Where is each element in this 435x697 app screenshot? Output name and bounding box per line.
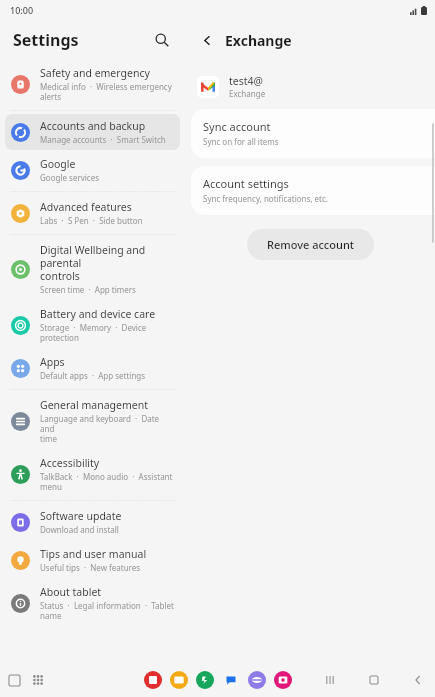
- staticText: Download and install: [40, 524, 119, 535]
- staticText: Google: [40, 157, 76, 171]
- staticText: Google services: [40, 172, 100, 183]
- button[interactable]: Software update: [5, 504, 180, 540]
- staticText: Default apps · App settings: [40, 370, 146, 381]
- button[interactable]: Recents: [6, 672, 22, 688]
- button[interactable]: Recent apps: [321, 671, 339, 689]
- staticText: Exchange: [229, 88, 266, 99]
- button[interactable]: About tablet: [5, 580, 180, 626]
- button[interactable]: Sync account: [191, 109, 435, 158]
- staticText: Useful tips · New features: [40, 562, 141, 573]
- button[interactable]: All apps: [30, 672, 46, 688]
- button[interactable]: Phone: [196, 671, 214, 689]
- staticText: Sync frequency, notifications, etc.: [203, 193, 328, 204]
- staticText: Manage accounts · Smart Switch: [40, 134, 166, 145]
- button[interactable]: General management: [5, 393, 180, 449]
- button[interactable]: Files: [170, 671, 188, 689]
- button[interactable]: Back: [195, 28, 219, 52]
- staticText: Safety and emergency: [40, 66, 150, 80]
- staticText: Sync account: [203, 119, 271, 134]
- staticText: Accessibility: [40, 456, 100, 470]
- button[interactable]: Internet: [248, 671, 266, 689]
- staticText: Labs · S Pen · Side button: [40, 215, 143, 226]
- staticText: Storage · Memory · Device protection: [40, 322, 174, 343]
- staticText: Battery and device care: [40, 307, 156, 321]
- staticText: Screen time · App timers: [40, 284, 136, 295]
- button[interactable]: Messages: [222, 671, 240, 689]
- button[interactable]: Home: [365, 671, 383, 689]
- staticText: Medical info · Wireless emergency alerts: [40, 81, 172, 102]
- button[interactable]: Accounts and backup: [5, 114, 180, 150]
- button[interactable]: Accessibility: [5, 451, 180, 497]
- button[interactable]: Safety and emergency: [5, 61, 180, 107]
- staticText: About tablet: [40, 585, 102, 599]
- button[interactable]: Account settings: [191, 166, 435, 215]
- button[interactable]: Google: [5, 152, 180, 188]
- staticText: TalkBack · Mono audio · Assistant menu: [40, 471, 173, 492]
- staticText: Account settings: [203, 176, 289, 191]
- button[interactable]: Camera: [274, 671, 292, 689]
- staticText: General management: [40, 398, 148, 412]
- staticText: Accounts and backup: [40, 119, 146, 133]
- staticText: Digital Wellbeing and parental controls: [40, 243, 174, 283]
- button[interactable]: Advanced features: [5, 195, 180, 231]
- staticText: Remove account: [267, 237, 354, 252]
- staticText: Sync on for all items: [203, 136, 279, 147]
- button[interactable]: Search: [149, 27, 175, 53]
- staticText: Settings: [13, 29, 79, 51]
- staticText: Status · Legal information · Tablet name: [40, 600, 174, 621]
- button[interactable]: Back: [409, 671, 427, 689]
- button[interactable]: Notes: [144, 671, 162, 689]
- button[interactable]: Remove account: [247, 229, 374, 260]
- staticText: Software update: [40, 509, 122, 523]
- staticText: test4@: [229, 74, 263, 88]
- staticText: Exchange: [225, 31, 292, 50]
- staticText: Tips and user manual: [40, 547, 147, 561]
- staticText: 10:00: [10, 4, 34, 16]
- staticText: Advanced features: [40, 200, 132, 214]
- button[interactable]: Apps: [5, 350, 180, 386]
- button[interactable]: Tips and user manual: [5, 542, 180, 578]
- button[interactable]: Digital Wellbeing and parental controls: [5, 238, 180, 300]
- button[interactable]: Battery and device care: [5, 302, 180, 348]
- staticText: Language and keyboard · Date and time: [40, 413, 174, 444]
- staticText: Apps: [40, 355, 65, 369]
